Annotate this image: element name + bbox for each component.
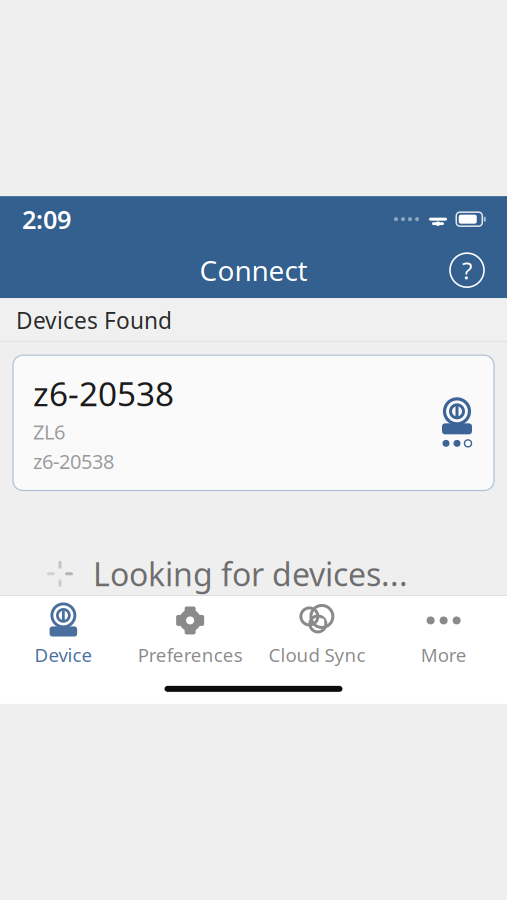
staticText: Connect xyxy=(199,252,307,289)
staticText: ? xyxy=(462,254,472,286)
button[interactable]: More xyxy=(380,596,507,673)
staticText: Preferences xyxy=(138,642,243,667)
button[interactable]: Cloud Sync xyxy=(253,596,380,673)
staticText: 2:09 xyxy=(22,202,71,236)
button[interactable]: Help xyxy=(445,248,489,292)
staticText: z6-20538 xyxy=(33,371,174,415)
button[interactable]: Device xyxy=(0,596,127,673)
staticText: Devices Found xyxy=(16,305,172,335)
button[interactable]: Preferences xyxy=(127,596,254,673)
staticText: Device xyxy=(34,642,92,667)
button[interactable]: z6-20538 xyxy=(13,355,494,491)
staticText: More xyxy=(421,642,467,667)
staticText: ZL6 xyxy=(33,418,65,445)
staticText: z6-20538 xyxy=(33,448,114,475)
staticText: Cloud Sync xyxy=(268,642,365,667)
staticText: Looking for devices... xyxy=(93,552,408,595)
